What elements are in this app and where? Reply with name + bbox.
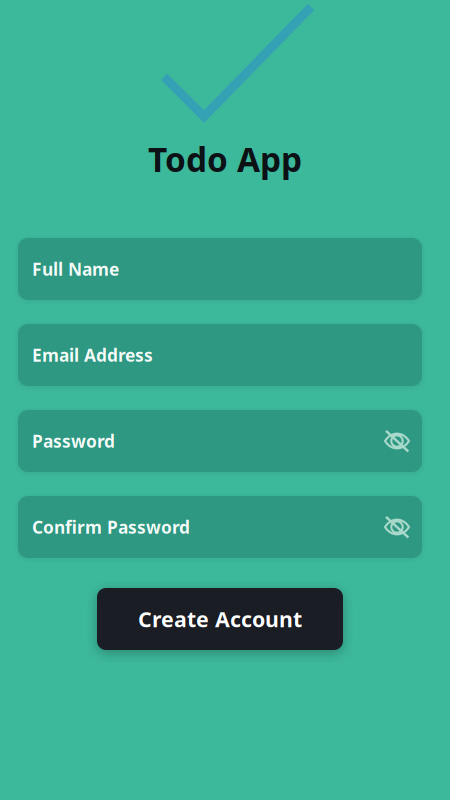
staticText: Confirm Password	[32, 515, 190, 538]
staticText: Create Account	[138, 605, 302, 633]
button[interactable]: Password	[18, 410, 422, 472]
button[interactable]: Email Address	[18, 324, 422, 386]
staticText: Email Address	[32, 343, 153, 366]
button[interactable]: Full Name	[18, 238, 422, 300]
staticText: Todo App	[148, 137, 302, 181]
staticText: Full Name	[32, 257, 119, 280]
button[interactable]: Create Account	[97, 588, 343, 650]
staticText: Password	[32, 429, 115, 452]
button[interactable]: Confirm Password	[18, 496, 422, 558]
